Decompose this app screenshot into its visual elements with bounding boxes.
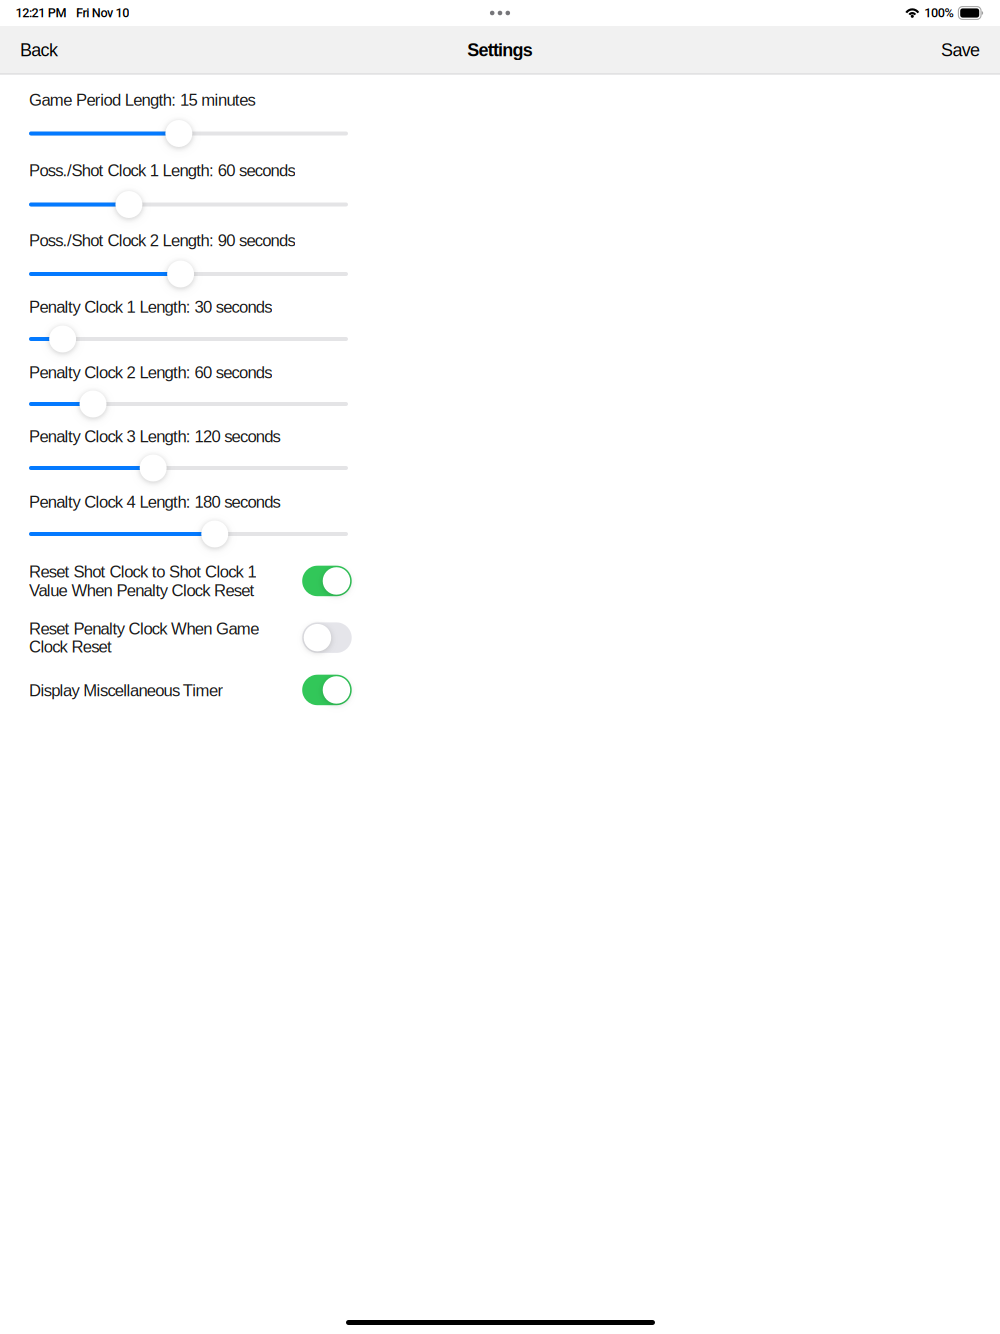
staticText: Settings [467,40,533,60]
button[interactable]: Slider [29,120,348,147]
staticText: Value When Penalty Clock Reset [29,581,255,600]
staticText: Reset Shot Clock to Shot Clock 1 [29,562,256,581]
button[interactable]: Reset Penalty Clock When Game Clock Rese… [302,622,352,653]
staticText: Fri Nov 10 [76,6,129,20]
staticText: Poss./Shot Clock 2 Length: 90 seconds [29,231,295,250]
button[interactable]: Slider [29,454,348,481]
button[interactable]: Reset Shot Clock to Shot Clock 1 Value W… [302,566,352,596]
button[interactable]: Slider [29,191,348,218]
staticText: Save [941,40,980,60]
staticText: Game Period Length: 15 minutes [29,91,256,109]
button[interactable]: Back [11,26,67,74]
button[interactable]: Slider [29,520,348,547]
button[interactable]: Slider [29,260,348,287]
staticText: Back [20,40,58,60]
button[interactable]: Save [932,26,989,74]
staticText: Clock Reset [29,637,112,656]
staticText: Penalty Clock 3 Length: 120 seconds [29,427,281,446]
staticText: Display Miscellaneous Timer [29,681,223,700]
staticText: Penalty Clock 4 Length: 180 seconds [29,493,281,511]
staticText: Reset Penalty Clock When Game [29,619,259,638]
staticText: Penalty Clock 1 Length: 30 seconds [29,298,272,316]
button[interactable]: Slider [29,325,348,352]
staticText: 12:21 PM [15,6,66,20]
staticText: Penalty Clock 2 Length: 60 seconds [29,363,272,382]
button[interactable]: Display Miscellaneous Timer [302,675,352,705]
staticText: 100% [924,6,953,20]
staticText: Poss./Shot Clock 1 Length: 60 seconds [29,161,295,180]
button[interactable]: Slider [29,390,348,417]
